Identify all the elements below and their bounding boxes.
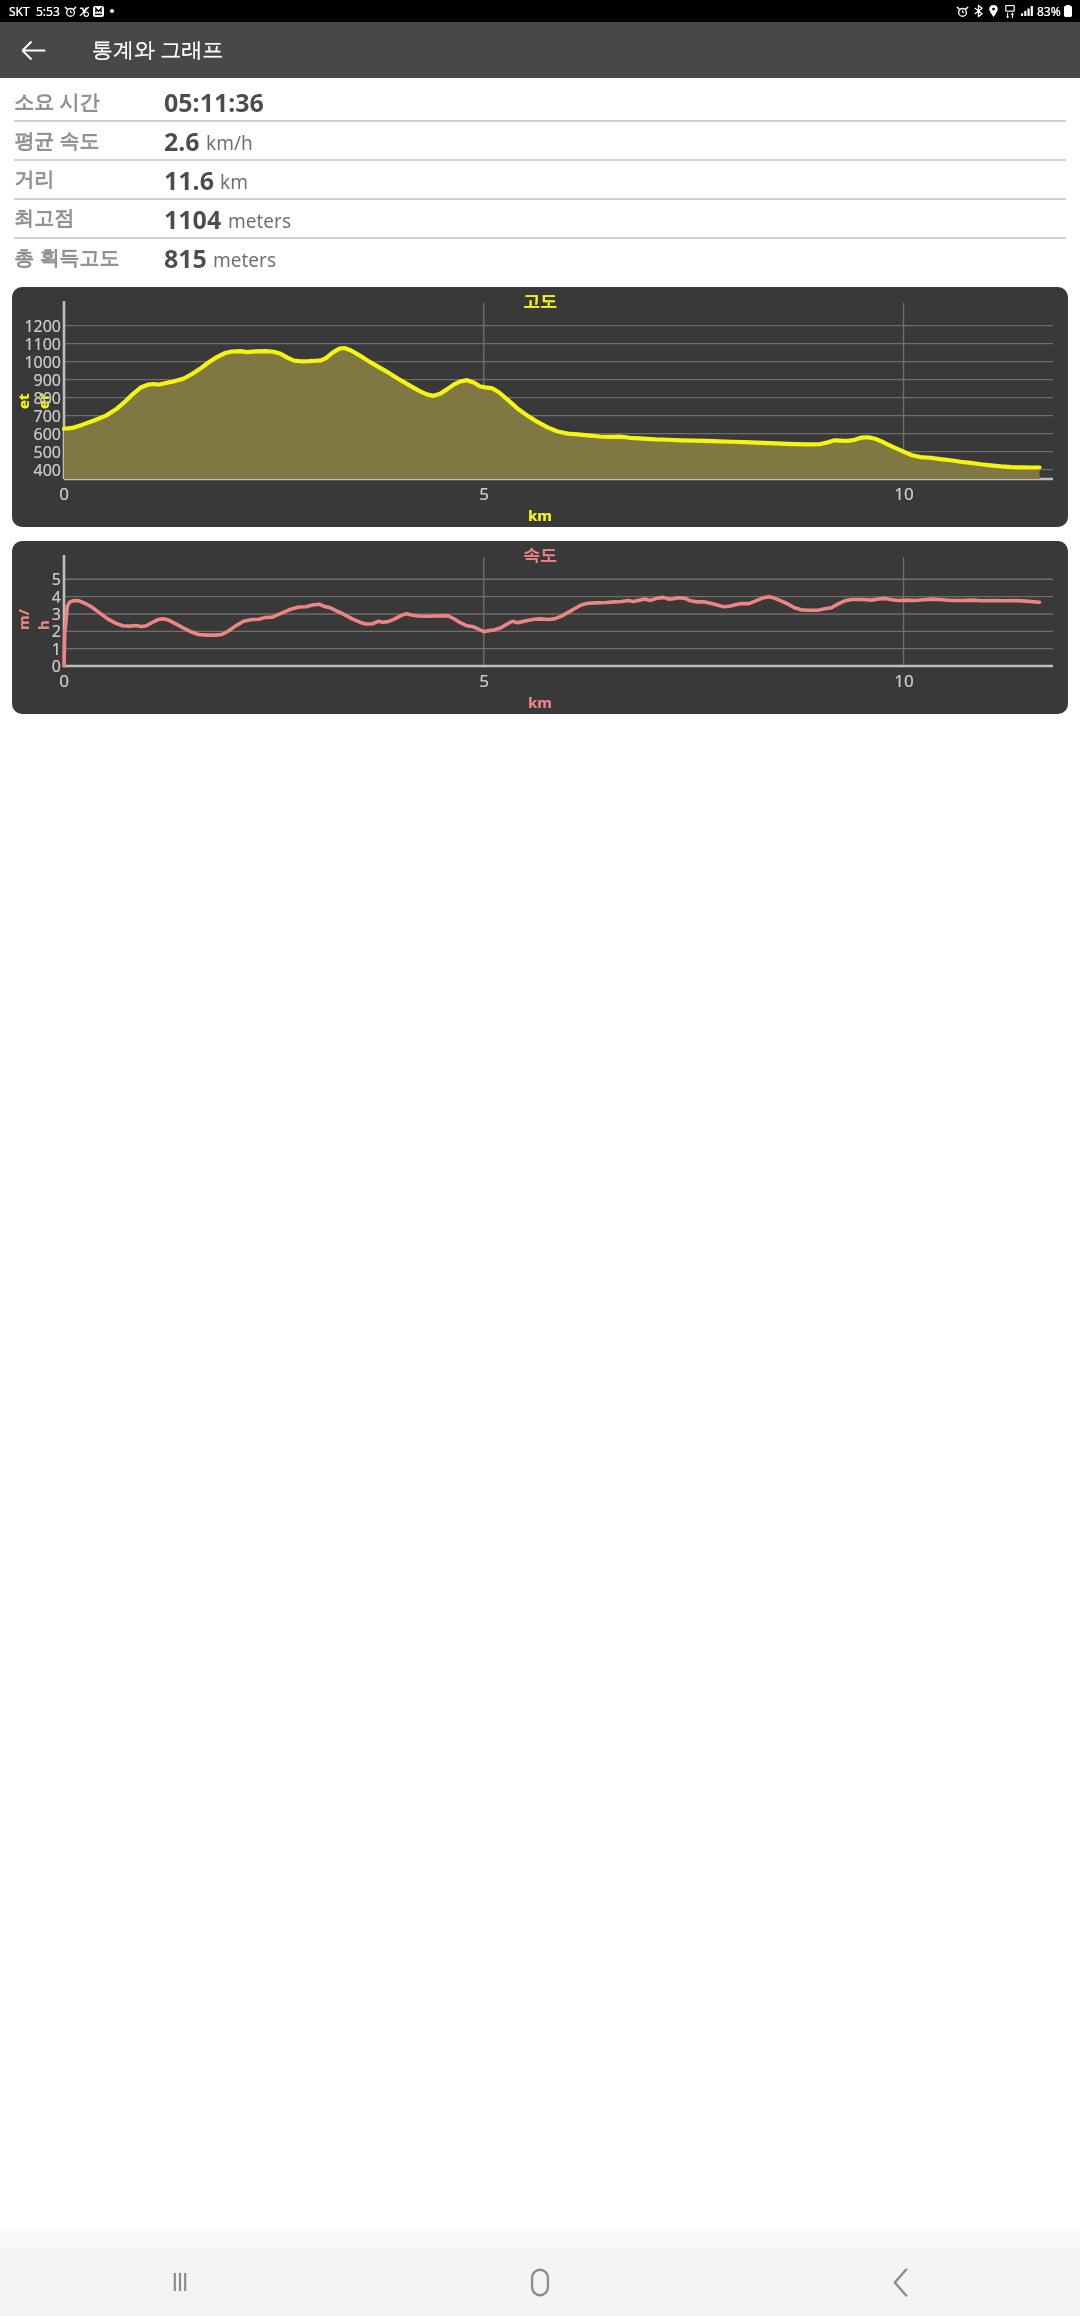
staticText: 1000	[12, 351, 61, 373]
staticText: 11.6	[164, 163, 214, 197]
button[interactable]: 소요 시간	[14, 83, 1066, 122]
button[interactable]: 거리	[14, 161, 1066, 200]
staticText: km	[220, 169, 248, 195]
button[interactable]: 평균 속도	[14, 122, 1066, 161]
staticText: 1200	[12, 315, 61, 337]
button[interactable]: 총 획득고도	[14, 239, 1066, 276]
staticText: 총 획득고도	[14, 244, 152, 271]
staticText: km	[528, 692, 552, 712]
staticText: 최고점	[14, 206, 152, 231]
button[interactable]: Back	[9, 26, 57, 74]
staticText: 2	[12, 620, 61, 642]
button[interactable]: 속도	[12, 541, 1068, 714]
button[interactable]: 최고점	[14, 200, 1066, 239]
staticText: 거리	[14, 167, 152, 192]
staticText: 소요 시간	[14, 88, 152, 115]
staticText: 5	[470, 669, 498, 692]
staticText: 2.6	[164, 124, 200, 158]
button[interactable]: Back	[720, 2248, 1080, 2316]
staticText: 05:11:36	[164, 85, 264, 119]
staticText: 3	[12, 603, 61, 625]
staticText: meters	[228, 208, 292, 234]
staticText: 1100	[12, 333, 61, 355]
staticText: 500	[12, 441, 61, 463]
staticText: 800	[12, 387, 61, 409]
button[interactable]: 고도	[12, 287, 1068, 527]
staticText: 0	[50, 482, 78, 505]
staticText: 83%	[1037, 3, 1061, 19]
staticText: SKT	[9, 3, 30, 19]
staticText: 고도	[523, 291, 557, 312]
staticText: 0	[50, 669, 78, 692]
staticText: 10	[890, 482, 918, 505]
staticText: 통계와 그래프	[92, 35, 224, 64]
staticText: 5	[12, 568, 61, 590]
staticText: 1	[12, 638, 61, 660]
staticText: 600	[12, 423, 61, 445]
staticText: km/h	[206, 130, 253, 156]
staticText: 815	[164, 241, 207, 275]
staticText: 700	[12, 405, 61, 427]
staticText: meters	[213, 247, 277, 273]
staticText: 5:53	[36, 3, 60, 19]
staticText: 평균 속도	[14, 127, 152, 154]
staticText: 5	[470, 482, 498, 505]
staticText: km/h	[12, 608, 53, 630]
staticText: 0	[12, 655, 61, 677]
staticText: 1104	[164, 202, 222, 236]
staticText: 속도	[523, 545, 557, 566]
staticText: 900	[12, 369, 61, 391]
staticText: 10	[890, 669, 918, 692]
staticText: 4	[12, 586, 61, 608]
staticText: meter	[12, 387, 53, 409]
button[interactable]: Recent apps	[0, 2248, 360, 2316]
staticText: km	[528, 505, 552, 525]
button[interactable]: Home	[360, 2248, 720, 2316]
staticText: 400	[12, 459, 61, 481]
